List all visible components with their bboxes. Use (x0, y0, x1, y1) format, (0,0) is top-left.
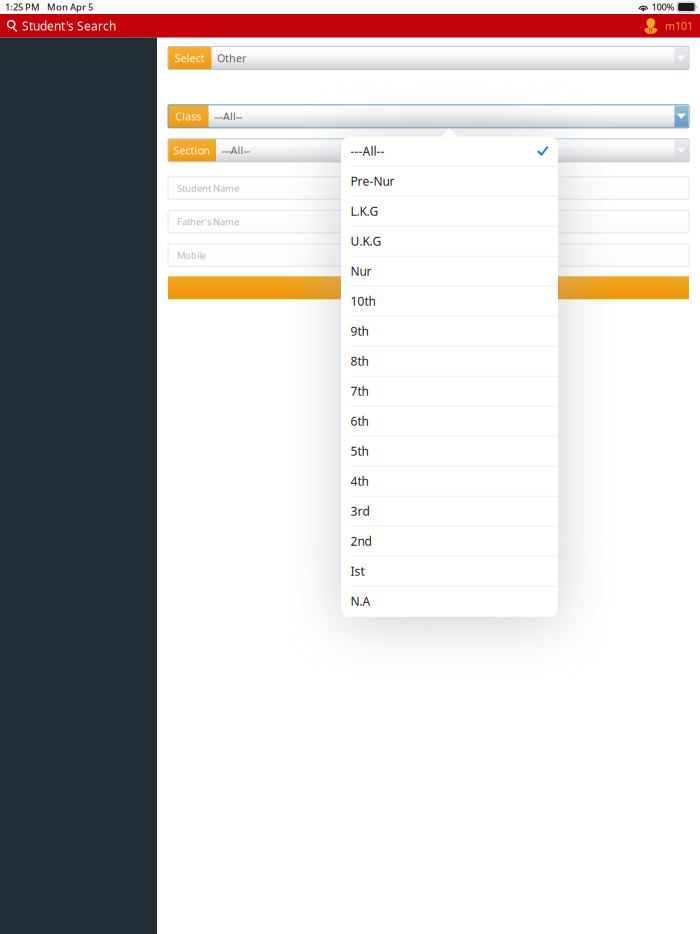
button[interactable]: Section (168, 139, 689, 162)
staticText: N.A (350, 593, 370, 609)
staticText: ---All-- (350, 143, 384, 159)
button[interactable]: Ist (341, 556, 558, 586)
staticText: 7th (350, 383, 368, 399)
staticText: 4th (350, 473, 368, 489)
staticText: L.K.G (350, 203, 378, 219)
button[interactable]: 8th (341, 346, 558, 376)
staticText: U.K.G (350, 233, 381, 249)
button[interactable]: N.A (341, 586, 558, 616)
button[interactable]: L.K.G (341, 196, 558, 226)
staticText: 10th (350, 293, 375, 309)
button[interactable]: Search (168, 276, 689, 299)
button[interactable]: Student Name (168, 177, 689, 199)
button[interactable]: Class (168, 105, 689, 128)
button[interactable]: 5th (341, 436, 558, 466)
staticText: ---All-- (221, 143, 249, 157)
button[interactable]: Father's Name (168, 210, 689, 233)
button[interactable]: Nur (341, 256, 558, 286)
staticText: 3rd (350, 503, 369, 519)
staticText: 6th (350, 413, 368, 429)
button[interactable]: 4th (341, 466, 558, 496)
staticText: Mon Apr 5 (47, 1, 93, 13)
staticText: Pre-Nur (350, 173, 394, 189)
staticText: 100% (652, 1, 675, 13)
button[interactable]: 9th (341, 316, 558, 346)
button[interactable]: ---All-- (341, 136, 558, 166)
staticText: Ist (350, 563, 364, 579)
button[interactable]: Select (168, 46, 689, 69)
staticText: ---All-- (214, 109, 242, 123)
staticText: Student's Search (22, 18, 116, 34)
staticText: m101 (665, 19, 693, 33)
button[interactable]: 7th (341, 376, 558, 406)
staticText: 1:25 PM (5, 1, 40, 13)
button[interactable]: Pre-Nur (341, 166, 558, 196)
staticText: 5th (350, 443, 368, 459)
staticText: Nur (350, 263, 371, 279)
button[interactable]: 10th (341, 286, 558, 316)
staticText: Select (175, 51, 205, 65)
button[interactable]: 2nd (341, 526, 558, 556)
staticText: 9th (350, 323, 368, 339)
staticText: Other (217, 51, 246, 65)
staticText: Class (175, 109, 201, 123)
button[interactable]: Mobile (168, 244, 689, 266)
button[interactable]: U.K.G (341, 226, 558, 256)
staticText: Father's Name (177, 215, 239, 228)
staticText: 2nd (350, 533, 371, 549)
button[interactable]: m101 (641, 17, 696, 34)
button[interactable]: 6th (341, 406, 558, 436)
staticText: 8th (350, 353, 368, 369)
staticText: Mobile (177, 249, 206, 261)
staticText: Student Name (177, 182, 239, 194)
staticText: Section (173, 143, 210, 157)
button[interactable]: 3rd (341, 496, 558, 526)
